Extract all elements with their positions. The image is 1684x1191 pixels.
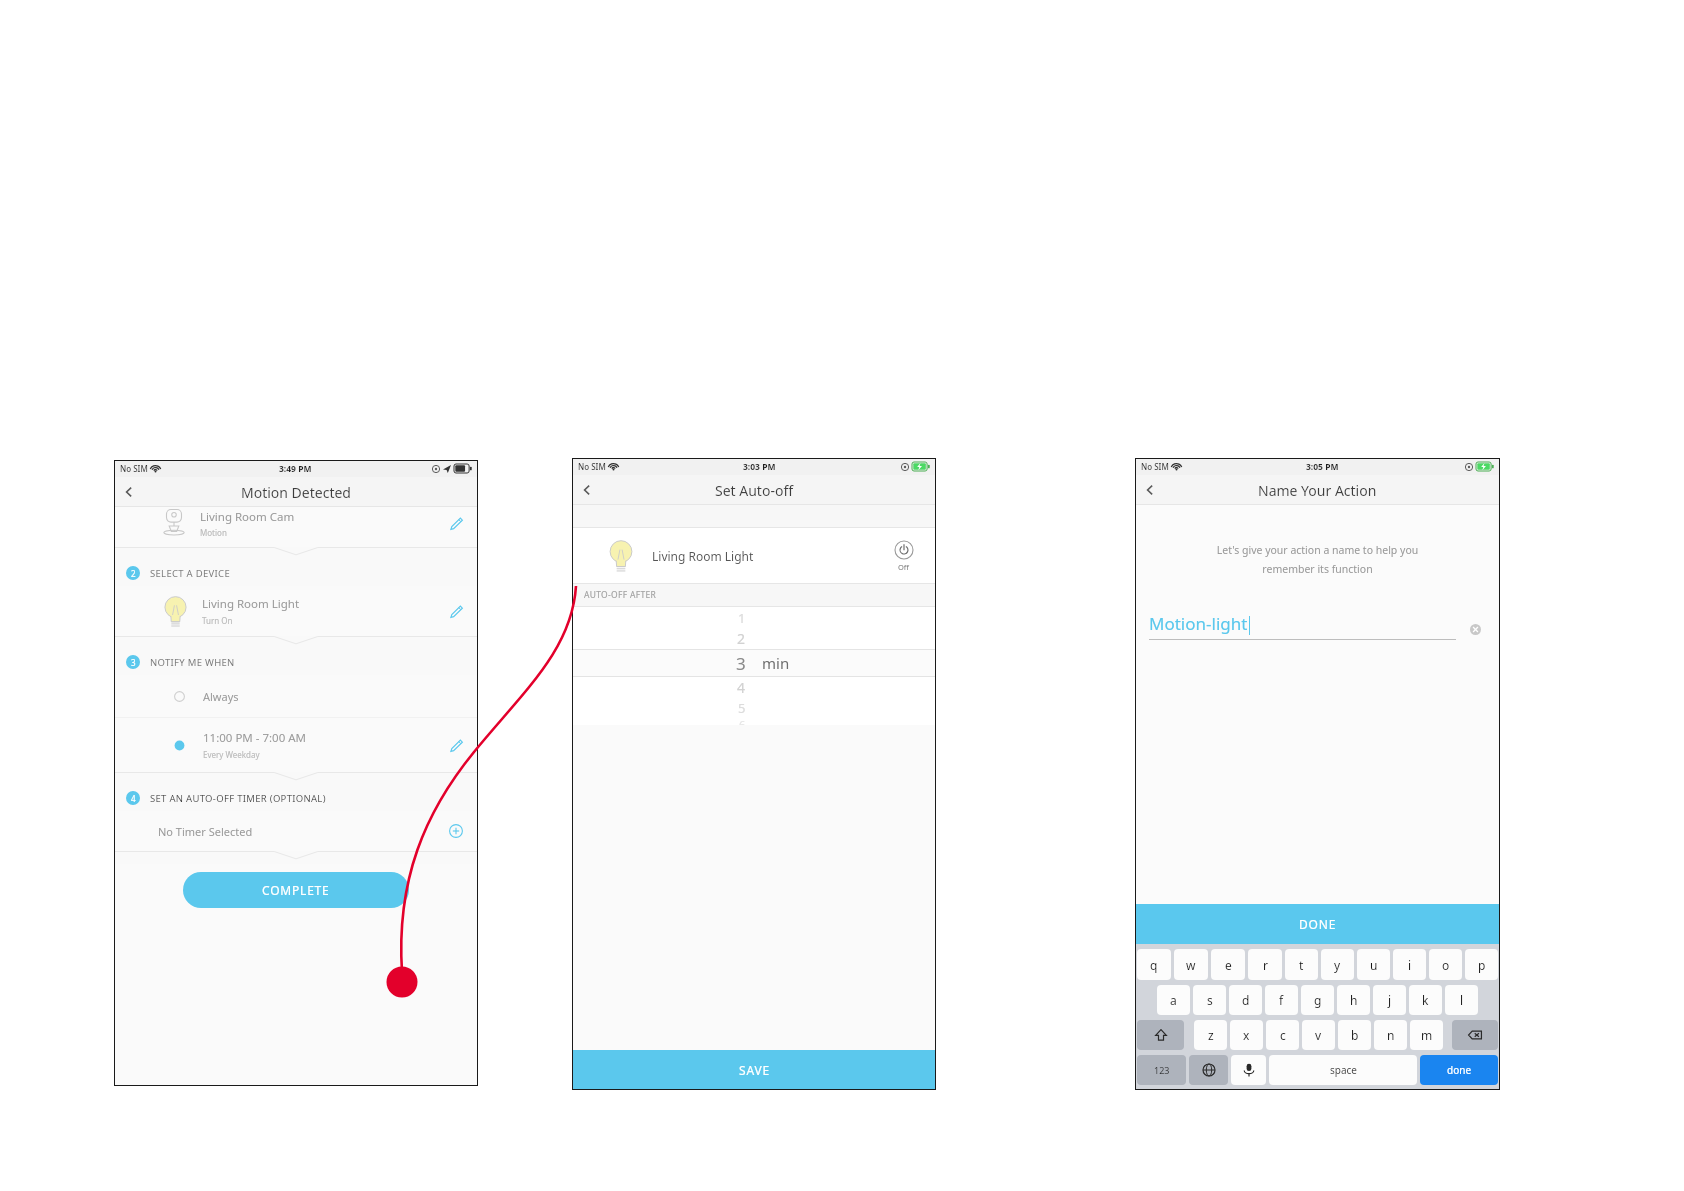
button[interactable]: z — [1194, 1020, 1227, 1050]
staticText: SET AN AUTO-OFF TIMER (OPTIONAL) — [150, 792, 326, 805]
button[interactable]: t — [1285, 949, 1318, 980]
staticText: 2 — [737, 629, 746, 648]
staticText: min — [762, 653, 790, 673]
staticText: l — [1460, 992, 1464, 1008]
button[interactable]: 3 — [572, 650, 936, 676]
staticText: e — [1225, 957, 1232, 973]
staticText: r — [1263, 957, 1268, 973]
button[interactable]: h — [1337, 985, 1370, 1015]
staticText: Name Your Action — [1258, 481, 1377, 500]
button[interactable]: b — [1338, 1020, 1371, 1050]
staticText: 3:03 PM — [743, 461, 776, 473]
button[interactable]: Clear text — [1464, 618, 1486, 640]
staticText: Living Room Light — [202, 596, 300, 612]
button[interactable]: p — [1465, 949, 1498, 980]
button[interactable]: SAVE — [572, 1050, 936, 1090]
staticText: x — [1243, 1027, 1250, 1043]
staticText: w — [1186, 957, 1196, 973]
staticText: t — [1299, 957, 1304, 973]
staticText: n — [1387, 1027, 1395, 1043]
staticText: space — [1330, 1063, 1357, 1077]
button[interactable]: s — [1193, 985, 1226, 1015]
button[interactable]: o — [1429, 949, 1462, 980]
button[interactable]: k — [1409, 985, 1442, 1015]
staticText: done — [1447, 1063, 1472, 1077]
button[interactable]: x — [1230, 1020, 1263, 1050]
button[interactable]: Back — [1135, 475, 1165, 505]
button[interactable]: c — [1266, 1020, 1299, 1050]
staticText: NOTIFY ME WHEN — [150, 656, 235, 669]
staticText: 3:05 PM — [1306, 461, 1339, 473]
button[interactable]: w — [1174, 949, 1208, 980]
button[interactable]: Switch keyboard — [1189, 1055, 1228, 1085]
staticText: c — [1280, 1027, 1286, 1043]
staticText: i — [1408, 957, 1412, 973]
staticText: a — [1170, 992, 1177, 1008]
staticText: SAVE — [739, 1062, 770, 1078]
staticText: Motion Detected — [241, 483, 351, 502]
staticText: o — [1442, 957, 1450, 973]
staticText: SELECT A DEVICE — [150, 567, 230, 580]
button[interactable]: r — [1248, 949, 1282, 980]
button[interactable]: g — [1301, 985, 1334, 1015]
button[interactable]: u — [1357, 949, 1390, 980]
staticText: s — [1207, 992, 1213, 1008]
button[interactable]: Always — [114, 675, 478, 717]
staticText: b — [1351, 1027, 1359, 1043]
staticText: 3 — [736, 652, 746, 675]
staticText: h — [1350, 992, 1358, 1008]
button[interactable]: space — [1269, 1055, 1417, 1085]
staticText: m — [1421, 1027, 1433, 1043]
button[interactable]: y — [1321, 949, 1354, 980]
staticText: g — [1314, 992, 1322, 1008]
staticText: u — [1370, 957, 1378, 973]
staticText: AUTO-OFF AFTER — [584, 589, 657, 601]
staticText: Off — [898, 562, 910, 572]
staticText: Set Auto-off — [715, 481, 794, 500]
button[interactable]: done — [1420, 1055, 1498, 1085]
staticText: d — [1242, 992, 1250, 1008]
button[interactable]: Add timer — [442, 817, 470, 845]
button[interactable]: Living Room Light — [572, 528, 936, 583]
button[interactable]: Edit Living Room Light — [442, 597, 470, 625]
button[interactable]: Motion-light — [1149, 612, 1486, 640]
staticText: Motion-light — [1149, 612, 1248, 635]
button[interactable]: a — [1157, 985, 1190, 1015]
staticText: q — [1150, 957, 1158, 973]
button[interactable]: Back — [114, 477, 144, 507]
button[interactable]: 123 — [1137, 1055, 1186, 1085]
staticText: v — [1315, 1027, 1322, 1043]
staticText: 6 — [739, 717, 746, 725]
staticText: z — [1208, 1027, 1214, 1043]
button[interactable]: n — [1374, 1020, 1407, 1050]
button[interactable]: j — [1373, 985, 1406, 1015]
button[interactable]: Dictation — [1231, 1055, 1266, 1085]
button[interactable]: Edit schedule — [442, 731, 470, 759]
button[interactable]: f — [1265, 985, 1298, 1015]
button[interactable]: Power toggle, Off — [894, 540, 914, 572]
button[interactable]: COMPLETE — [183, 872, 409, 908]
button[interactable]: No Timer Selected — [114, 811, 478, 851]
button[interactable]: DONE — [1135, 904, 1500, 944]
staticText: k — [1422, 992, 1429, 1008]
staticText: j — [1388, 992, 1392, 1008]
staticText: Living Room Light — [652, 548, 754, 564]
button[interactable]: m — [1410, 1020, 1443, 1050]
button[interactable]: v — [1302, 1020, 1335, 1050]
button[interactable]: 11:00 PM - 7:00 AM — [114, 718, 478, 772]
staticText: No SIM — [1141, 461, 1169, 472]
staticText: Let's give your action a name to help yo… — [1135, 543, 1500, 557]
button[interactable]: Edit Living Room Cam — [442, 509, 470, 537]
button[interactable]: i — [1393, 949, 1426, 980]
staticText: No Timer Selected — [158, 824, 253, 839]
staticText: 5 — [738, 699, 746, 717]
button[interactable]: Backspace — [1452, 1020, 1498, 1050]
button[interactable]: d — [1229, 985, 1262, 1015]
button[interactable]: Back — [572, 475, 602, 505]
button[interactable]: Living Room Cam — [158, 507, 470, 547]
button[interactable]: l — [1445, 985, 1478, 1015]
button[interactable]: q — [1137, 949, 1171, 980]
button[interactable]: Shift — [1137, 1020, 1184, 1050]
button[interactable]: Living Room Light — [158, 586, 470, 636]
button[interactable]: e — [1211, 949, 1245, 980]
